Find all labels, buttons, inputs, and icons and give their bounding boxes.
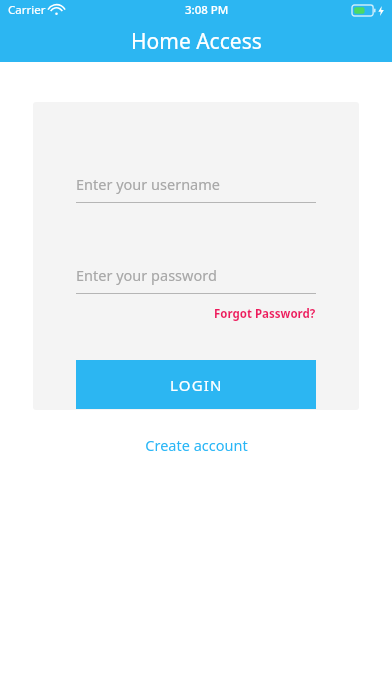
button[interactable]: Enter your password	[76, 265, 316, 294]
button[interactable]: Create account	[137, 431, 256, 459]
staticText: Carrier	[8, 2, 46, 18]
staticText: Enter your password	[76, 265, 217, 285]
staticText: Forgot Password?	[214, 306, 316, 322]
staticText: Home Access	[131, 27, 262, 56]
button[interactable]: LOGIN	[76, 360, 316, 409]
staticText: Create account	[145, 435, 248, 455]
staticText: 3:08 PM	[185, 2, 229, 18]
staticText: Enter your username	[76, 174, 220, 194]
staticText: LOGIN	[170, 375, 223, 395]
button[interactable]: Enter your username	[76, 174, 316, 203]
button[interactable]: Forgot Password?	[214, 304, 316, 324]
